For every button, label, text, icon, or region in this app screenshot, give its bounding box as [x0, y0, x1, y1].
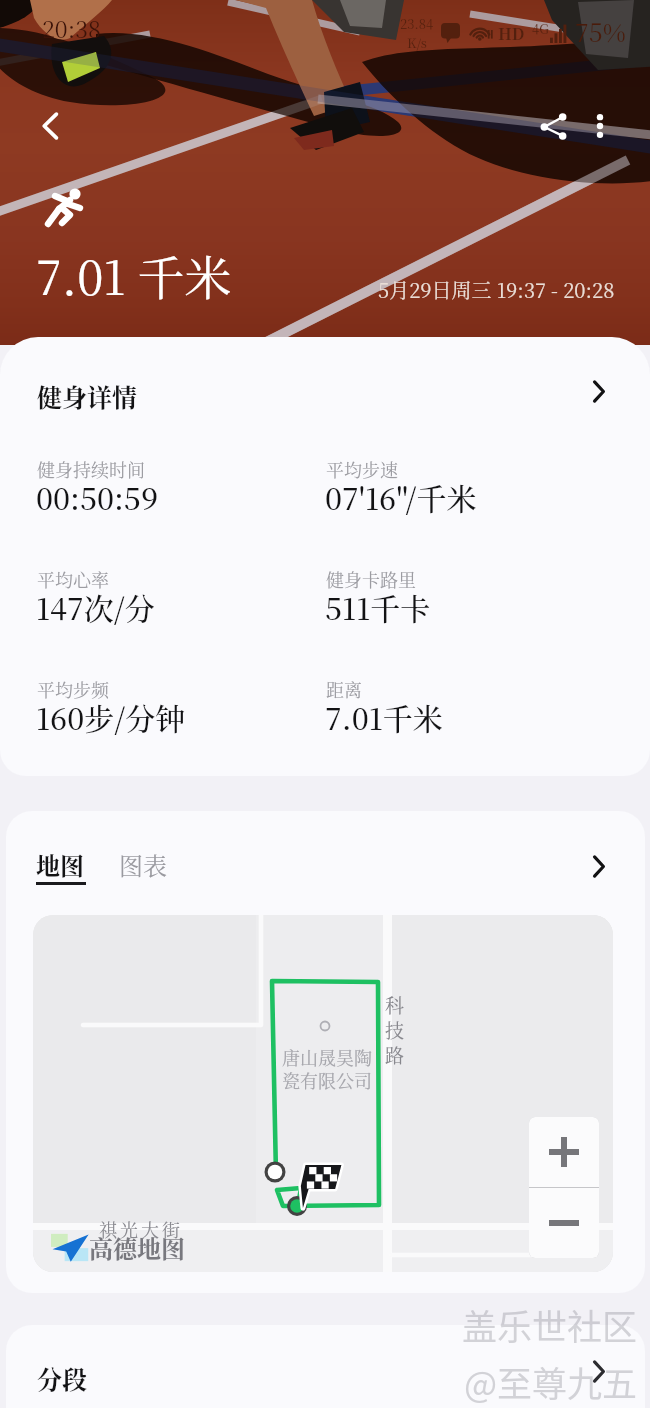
staticText: 分段 [37, 1360, 88, 1396]
staticText: 4G [532, 19, 549, 38]
button[interactable]: 地图 [36, 847, 84, 881]
staticText: 平均步频 [37, 676, 109, 702]
staticText: 5月29日周三 19:37 - 20:28 [378, 275, 615, 304]
staticText: HD [498, 22, 525, 45]
staticText: 唐山晟昊陶 瓷有限公司 [282, 1044, 372, 1093]
staticText: 7.01 千米 [36, 241, 232, 309]
button[interactable]: More options [578, 104, 622, 148]
staticText: 平均步速 [326, 456, 398, 482]
staticText: 地图 [36, 847, 84, 881]
staticText: 511千卡 [325, 585, 431, 628]
button[interactable]: Route map [33, 915, 613, 1272]
staticText: 图表 [119, 847, 167, 881]
staticText: 盖乐世社区 [462, 1299, 638, 1350]
staticText: 00:50:59 [36, 475, 159, 518]
staticText: 祺光大街 [99, 1216, 183, 1242]
button[interactable]: 健身详情 [0, 337, 650, 447]
button[interactable]: Back [26, 102, 74, 150]
button[interactable]: Zoom out [529, 1188, 599, 1258]
staticText: @至尊九五 [464, 1356, 638, 1407]
staticText: 健身卡路里 [326, 566, 416, 592]
staticText: K/s [407, 33, 427, 52]
staticText: 7.01千米 [325, 695, 443, 738]
staticText: 健身持续时间 [37, 456, 145, 482]
staticText: 23.84 [400, 14, 434, 33]
staticText: 距离 [326, 676, 362, 702]
button[interactable]: 分段 [6, 1325, 645, 1408]
staticText: 科 技 路 [385, 991, 405, 1068]
staticText: 平均心率 [37, 566, 109, 592]
button[interactable]: Share [528, 101, 578, 151]
staticText: 07'16"/千米 [325, 475, 477, 518]
staticText: 高德地图 [89, 1230, 185, 1264]
staticText: 147次/分 [36, 585, 155, 628]
staticText: 160步/分钟 [36, 695, 186, 738]
staticText: 健身详情 [37, 378, 138, 414]
staticText: 20:38 [42, 12, 101, 45]
button[interactable]: Zoom in [529, 1117, 599, 1187]
button[interactable]: 图表 [119, 847, 167, 881]
staticText: 75% [575, 13, 626, 49]
